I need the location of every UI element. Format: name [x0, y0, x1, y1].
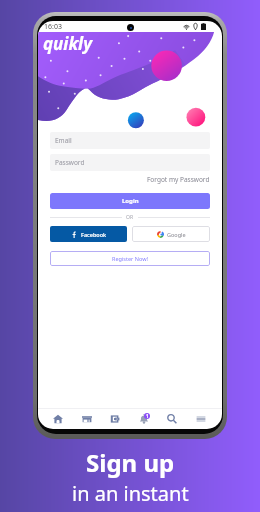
button[interactable]: Wallet: [104, 408, 125, 429]
button[interactable]: Email: [50, 132, 210, 149]
button[interactable]: Login: [50, 193, 210, 209]
staticText: 16:03: [44, 22, 62, 32]
button[interactable]: Forgot my Password: [147, 175, 210, 184]
button[interactable]: Notifications: [133, 408, 154, 429]
button[interactable]: Register Now!: [50, 251, 210, 266]
button[interactable]: Password: [50, 154, 210, 171]
button[interactable]: Home: [47, 408, 68, 429]
button[interactable]: Search: [161, 408, 182, 429]
staticText: in an instant: [72, 480, 189, 507]
staticText: Login: [122, 197, 139, 205]
button[interactable]: Facebook: [50, 226, 127, 242]
staticText: OR: [126, 214, 134, 221]
staticText: Email: [55, 136, 72, 145]
button[interactable]: Store: [76, 408, 97, 429]
staticText: Facebook: [81, 231, 107, 238]
staticText: Password: [55, 158, 85, 167]
button[interactable]: Menu: [190, 408, 211, 429]
staticText: quikly: [43, 32, 93, 55]
staticText: Sign up: [86, 446, 175, 479]
staticText: 1: [146, 413, 149, 419]
button[interactable]: Google: [132, 226, 210, 242]
staticText: Google: [167, 231, 186, 238]
staticText: Register Now!: [112, 255, 148, 262]
